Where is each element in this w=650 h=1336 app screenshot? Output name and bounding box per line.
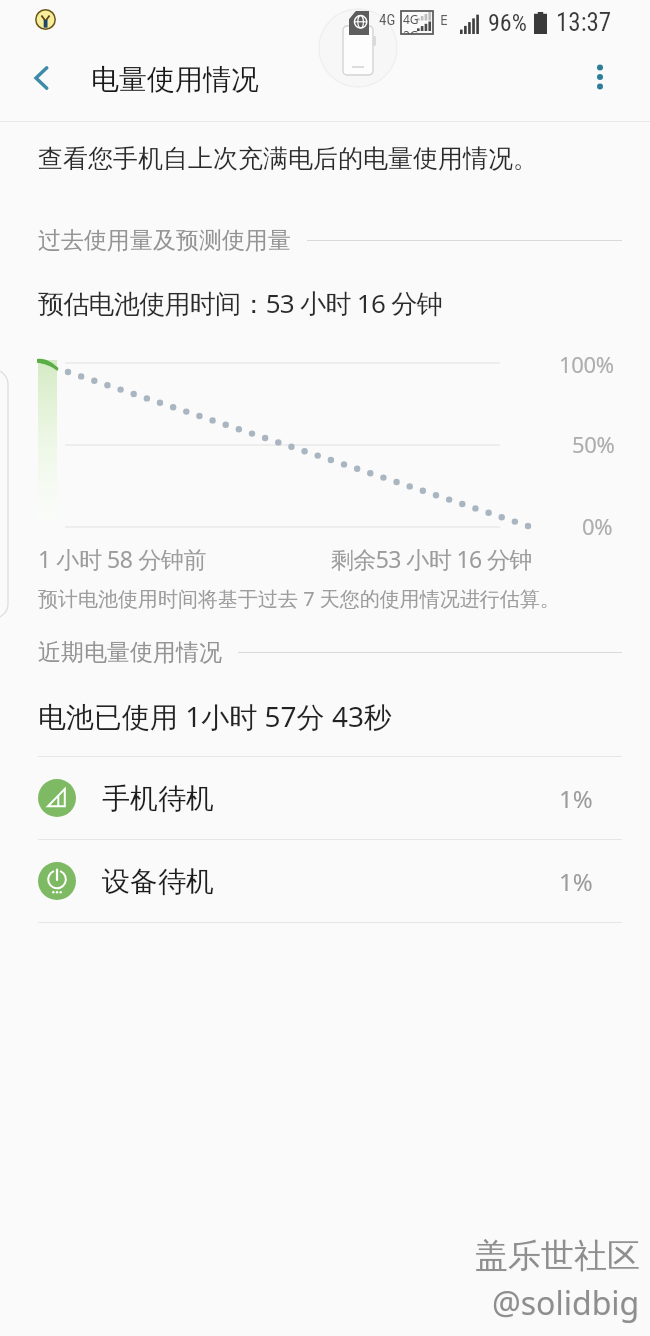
- staticText: 预估电池使用时间：53 小时 16 分钟: [38, 285, 442, 321]
- staticText: 4G: [379, 11, 396, 29]
- staticText: 设备待机: [102, 864, 214, 899]
- staticText: 手机待机: [102, 781, 214, 816]
- staticText: 2G: [403, 27, 419, 34]
- staticText: 盖乐世社区: [475, 1235, 640, 1277]
- staticText: 1%: [559, 782, 593, 815]
- button[interactable]: 手机待机: [0, 757, 650, 839]
- staticText: 电量使用情况: [91, 62, 259, 97]
- staticText: 预计电池使用时间将基于过去 7 天您的使用情况进行估算。: [38, 585, 560, 612]
- staticText: @solidbig: [492, 1281, 640, 1325]
- button[interactable]: Back: [14, 50, 70, 106]
- staticText: 100%: [559, 349, 614, 379]
- staticText: 剩余53 小时 16 分钟: [331, 543, 532, 574]
- staticText: 1 小时 58 分钟前: [38, 543, 207, 574]
- staticText: 盖乐世社区: [476, 1236, 641, 1278]
- staticText: 1%: [559, 865, 593, 898]
- staticText: 50%: [572, 429, 615, 459]
- button[interactable]: 设备待机: [0, 840, 650, 922]
- staticText: 0%: [582, 511, 613, 541]
- staticText: 13:37: [556, 8, 612, 37]
- staticText: 近期电量使用情况: [38, 638, 222, 667]
- staticText: 4G: [403, 11, 419, 27]
- staticText: 电池已使用 1小时 57分 43秒: [38, 697, 392, 735]
- staticText: E: [440, 10, 448, 29]
- staticText: 96%: [488, 9, 527, 37]
- staticText: 过去使用量及预测使用量: [38, 226, 291, 255]
- staticText: @solidbig: [493, 1282, 641, 1326]
- button[interactable]: More options: [572, 49, 628, 105]
- staticText: 查看您手机自上次充满电后的电量使用情况。: [38, 143, 538, 174]
